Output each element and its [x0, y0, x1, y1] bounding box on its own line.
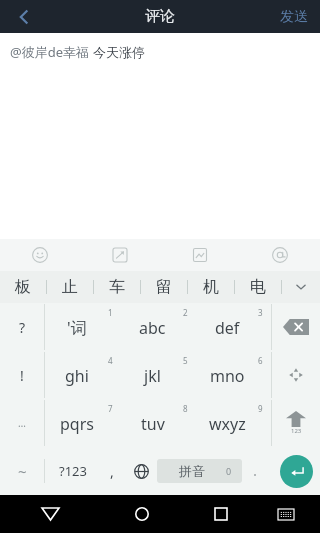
staticText: 板 [15, 277, 31, 297]
staticText: def [215, 317, 240, 339]
button[interactable]: pqrs [45, 399, 121, 447]
staticText: 车 [109, 277, 125, 297]
button[interactable]: wxyz [196, 399, 271, 447]
staticText: 123 [291, 427, 302, 435]
button[interactable]: Switch input method [258, 495, 314, 533]
staticText: ? [19, 318, 26, 337]
staticText: 8 [183, 403, 188, 414]
staticText: 今天涨停 [93, 44, 145, 60]
button[interactable]: ! [0, 351, 44, 399]
staticText: tuv [141, 413, 165, 435]
staticText: 1 [108, 307, 113, 318]
button[interactable]: 板 [0, 271, 46, 303]
button[interactable]: 电 [235, 271, 281, 303]
staticText: jkl [144, 365, 161, 387]
button[interactable]: 拼音 [157, 459, 242, 483]
staticText: 拼音 [179, 463, 205, 479]
staticText: ?123 [59, 462, 87, 480]
staticText: 电 [250, 277, 266, 297]
staticText: 机 [203, 277, 219, 297]
staticText: 6 [258, 355, 263, 366]
button[interactable]: 车 [94, 271, 140, 303]
button[interactable]: Shift numbers [272, 399, 320, 447]
staticText: abc [139, 317, 166, 339]
staticText: 。 [253, 466, 262, 477]
button[interactable]: ? [0, 303, 44, 351]
button[interactable]: , [99, 447, 125, 495]
button[interactable]: @彼岸de幸福 [0, 33, 320, 239]
staticText: 5 [183, 355, 188, 366]
staticText: pqrs [60, 413, 94, 435]
staticText: 7 [108, 403, 113, 414]
staticText: 评论 [145, 7, 175, 26]
staticText: 3 [258, 307, 263, 318]
button[interactable]: Move cursor [272, 351, 320, 399]
staticText: ghi [65, 365, 89, 387]
staticText: wxyz [209, 413, 246, 435]
button[interactable]: tuv [121, 399, 196, 447]
button[interactable]: Backspace [272, 303, 320, 351]
staticText: ~ [18, 461, 27, 481]
button[interactable]: Switch language [125, 447, 157, 495]
button[interactable]: 。 [242, 447, 272, 495]
staticText: 9 [258, 403, 263, 414]
button[interactable]: jkl [121, 351, 196, 399]
staticText: 0 [226, 465, 232, 477]
button[interactable]: mno [196, 351, 271, 399]
button[interactable]: 发送 [268, 0, 320, 33]
staticText: mno [210, 365, 245, 387]
staticText: 2 [183, 307, 188, 318]
button[interactable]: Recents [183, 495, 258, 533]
button[interactable]: Enter [272, 447, 320, 495]
button[interactable]: 机 [188, 271, 234, 303]
staticText: ! [20, 366, 24, 385]
staticText: 发送 [280, 8, 308, 26]
staticText: @彼岸de幸福 [10, 43, 93, 61]
button[interactable]: Stock [80, 239, 160, 271]
staticText: '词 [67, 317, 87, 339]
staticText: … [18, 416, 26, 430]
button[interactable]: Emoji [0, 239, 80, 271]
button[interactable]: def [196, 303, 271, 351]
staticText: 止 [62, 277, 78, 297]
button[interactable]: Home [101, 495, 183, 533]
staticText: 留 [156, 277, 172, 297]
button[interactable]: ghi [45, 351, 121, 399]
button[interactable]: '词 [45, 303, 121, 351]
staticText: , [110, 462, 114, 481]
staticText: 4 [108, 355, 113, 366]
button[interactable]: … [0, 399, 44, 447]
button[interactable]: Back [0, 0, 48, 33]
button[interactable]: 留 [141, 271, 187, 303]
button[interactable]: ~ [0, 447, 44, 495]
button[interactable]: Mention [240, 239, 320, 271]
button[interactable]: 止 [47, 271, 93, 303]
button[interactable]: Image [160, 239, 240, 271]
button[interactable]: abc [121, 303, 196, 351]
button[interactable]: Expand candidates [282, 271, 320, 303]
button[interactable]: ?123 [47, 447, 99, 495]
button[interactable]: Hide keyboard [0, 495, 101, 533]
